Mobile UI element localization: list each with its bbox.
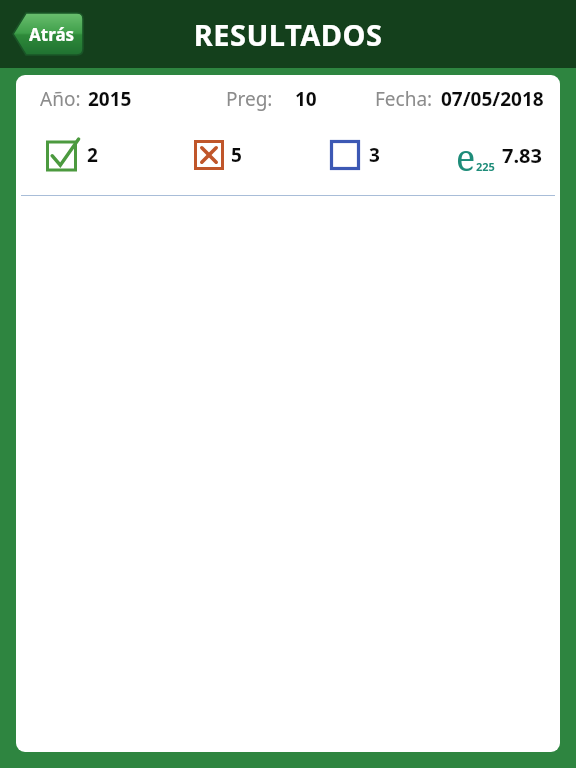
staticText: 2 [87, 142, 98, 168]
staticText: Fecha: [375, 86, 433, 112]
staticText: RESULTADOS [0, 15, 576, 54]
staticText: e [456, 133, 476, 177]
button[interactable]: Atrás [12, 12, 84, 56]
button[interactable]: Incorrectas [194, 140, 242, 170]
other: Sin responder [330, 140, 360, 170]
staticText: 5 [231, 142, 242, 168]
staticText: 225 [476, 159, 495, 174]
other: Correctas [46, 138, 80, 172]
button[interactable]: e [456, 133, 542, 177]
staticText: 10 [295, 86, 317, 112]
staticText: 3 [369, 142, 380, 168]
staticText: 2015 [88, 86, 132, 112]
staticText: Preg: [226, 86, 273, 112]
staticText: Atrás [29, 23, 75, 46]
staticText: 7.83 [502, 142, 542, 169]
button[interactable]: Correctas [46, 138, 98, 172]
other: Incorrectas [194, 140, 224, 170]
button[interactable]: Sin responder [330, 140, 380, 170]
staticText: 07/05/2018 [441, 86, 544, 112]
staticText: Año: [40, 86, 81, 112]
